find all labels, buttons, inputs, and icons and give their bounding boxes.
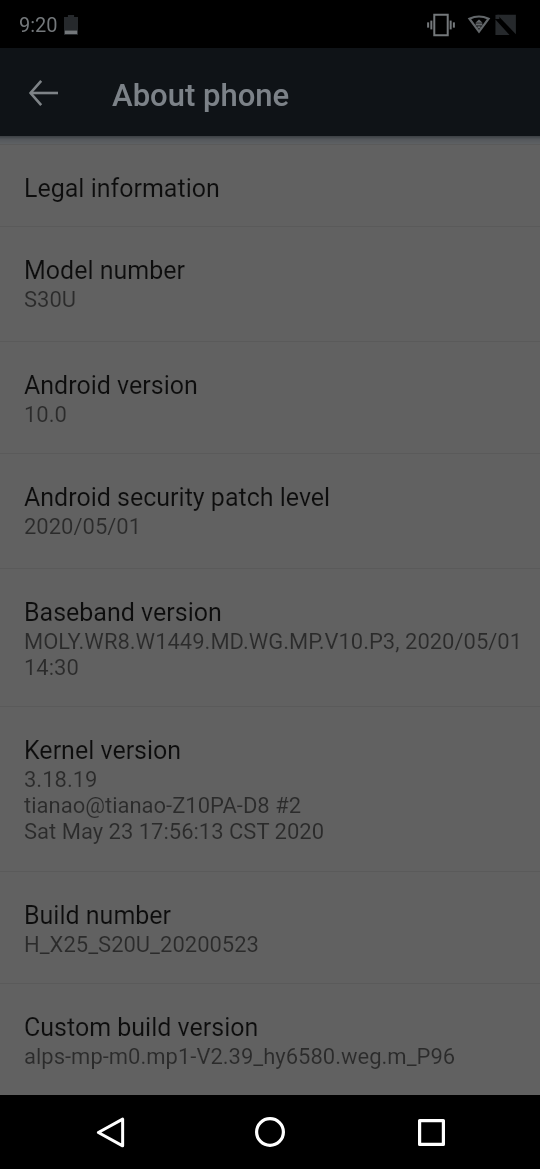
staticText: Custom build version (24, 1013, 259, 1042)
button[interactable]: Kernel version (0, 707, 540, 871)
staticText: 2020/05/01 (24, 514, 142, 540)
button[interactable]: Custom build version (0, 984, 540, 1095)
button[interactable]: Navigate up (18, 68, 70, 118)
button[interactable]: Back (80, 1102, 140, 1162)
staticText: Build number (24, 901, 172, 930)
staticText: Kernel version (24, 736, 182, 765)
button[interactable]: Baseband version (0, 569, 540, 706)
staticText: Legal information (24, 174, 220, 203)
staticText: 14:30 (24, 655, 79, 681)
staticText: alps-mp-m0.mp1-V2.39_hy6580.weg.m_P96 (24, 1044, 456, 1070)
button[interactable]: Recent apps (401, 1102, 461, 1162)
staticText: tianao@tianao-Z10PA-D8 #2 (24, 793, 302, 819)
button[interactable]: Home (240, 1102, 300, 1162)
staticText: Android security patch level (24, 483, 331, 512)
staticText: About phone (112, 77, 290, 113)
staticText: S30U (24, 287, 77, 313)
staticText: H_X25_S20U_20200523 (24, 932, 259, 958)
button[interactable]: Android security patch level (0, 454, 540, 568)
button[interactable]: Build number (0, 872, 540, 983)
staticText: 9:20 (19, 13, 58, 36)
staticText: Sat May 23 17:56:13 CST 2020 (24, 819, 325, 845)
staticText: Baseband version (24, 598, 222, 627)
button[interactable]: Legal information (0, 145, 540, 226)
staticText: Model number (24, 256, 185, 285)
staticText: 3.18.19 (24, 767, 98, 793)
staticText: 10.0 (24, 402, 67, 428)
button[interactable]: Model number (0, 227, 540, 341)
staticText: Android version (24, 371, 198, 400)
button[interactable]: Android version (0, 342, 540, 453)
staticText: MOLY.WR8.W1449.MD.WG.MP.V10.P3, 2020/05/… (24, 629, 523, 655)
